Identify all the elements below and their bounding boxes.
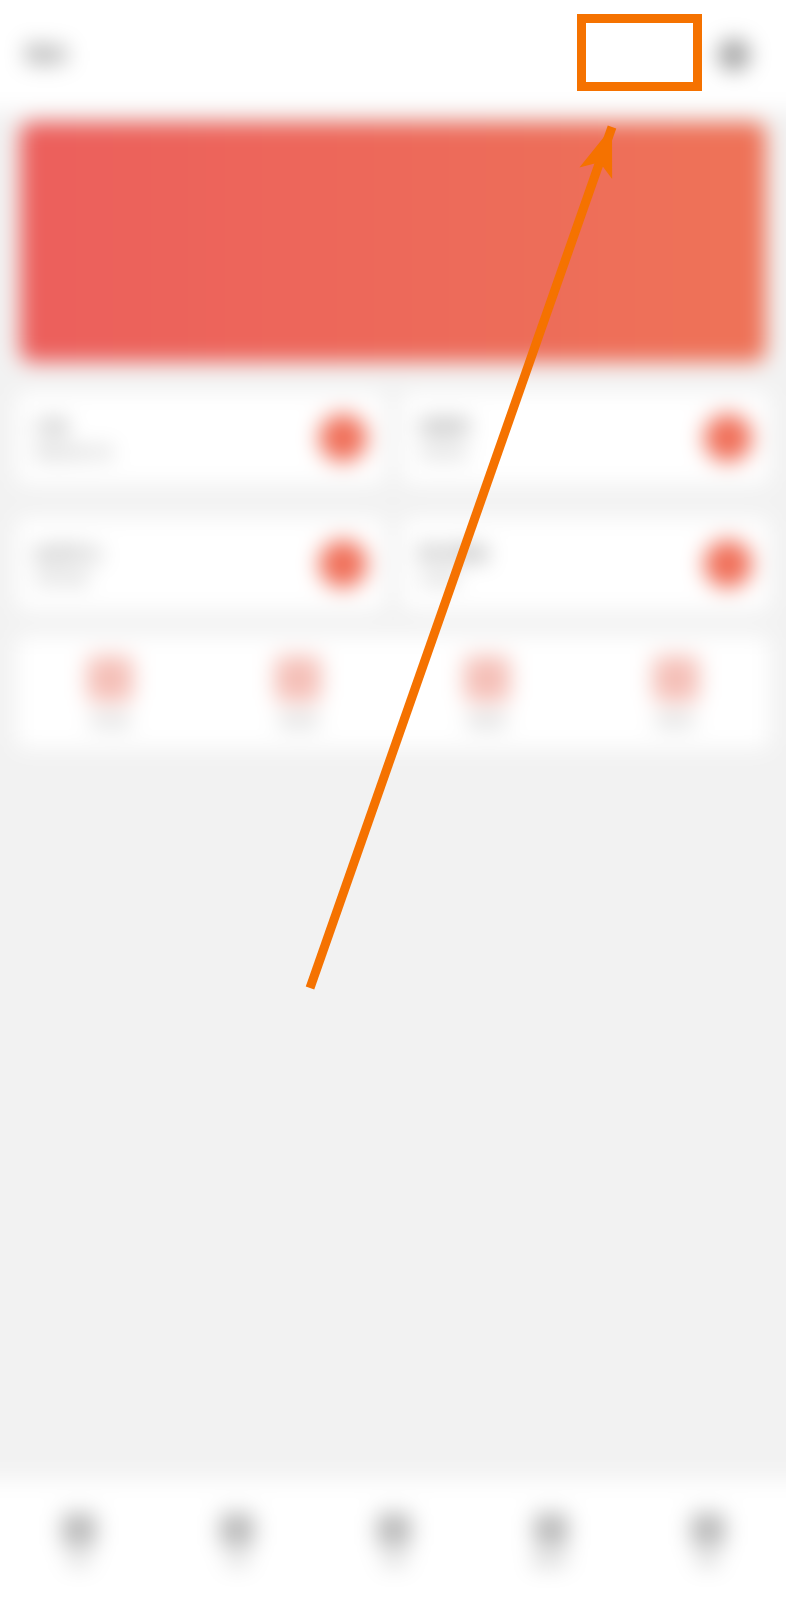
staticText: 我的 <box>696 1553 720 1568</box>
button[interactable]: 订单 <box>16 392 385 484</box>
staticText: 我的 <box>24 41 68 69</box>
staticText: 待付款 <box>91 712 130 728</box>
staticText: 分类 <box>225 1553 249 1568</box>
staticText: 首页 <box>67 1553 91 1568</box>
staticText: 积分商城 <box>419 543 487 564</box>
staticText: 2张可用 <box>419 443 466 461</box>
staticText: 购物车 <box>533 1553 569 1568</box>
button[interactable]: 优惠券 <box>401 392 770 484</box>
button[interactable]: 待评价 <box>581 656 770 728</box>
button[interactable]: 待发货 <box>204 656 392 728</box>
button[interactable]: 待收货 <box>392 656 581 728</box>
button[interactable]: Settings <box>706 27 762 83</box>
button[interactable]: 待付款 <box>16 656 204 728</box>
staticText: 待收货 <box>467 712 506 728</box>
staticText: 待评价 <box>656 712 695 728</box>
staticText: 查看全部订单 <box>34 444 112 460</box>
button[interactable]: 购物车 <box>472 1513 629 1568</box>
button[interactable]: 会员中心 <box>16 518 385 610</box>
button[interactable]: 发现 <box>315 1513 472 1568</box>
staticText: 会员中心 <box>34 543 102 564</box>
staticText: 订单 <box>34 417 68 438</box>
staticText: 待发货 <box>279 712 318 728</box>
button[interactable]: 我的 <box>629 1513 786 1568</box>
staticText: 优惠券 <box>419 416 470 437</box>
button[interactable]: 积分商城 <box>401 518 770 610</box>
staticText: 立即开通 <box>34 570 86 586</box>
staticText: 发现 <box>382 1553 406 1568</box>
staticText: 去兑换 <box>419 570 458 586</box>
button[interactable]: 首页 <box>0 1513 158 1568</box>
button[interactable]: 分类 <box>158 1513 315 1568</box>
